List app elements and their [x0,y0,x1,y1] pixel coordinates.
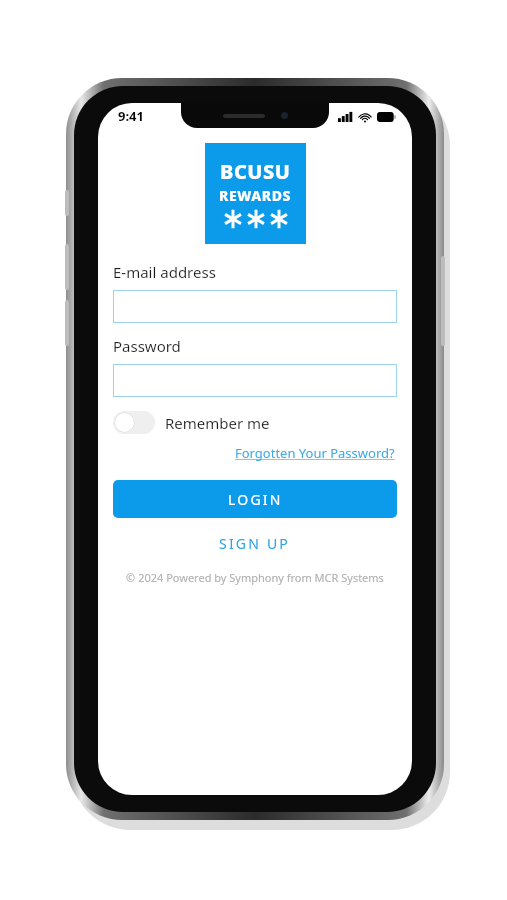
staticText: © 2024 Powered by Symphony from MCR Syst… [126,570,384,585]
staticText: REWARDS [219,186,292,205]
staticText: BCUSU [220,158,291,185]
staticText: Remember me [165,413,270,433]
staticText: 9:41 [118,107,144,125]
button[interactable] [113,364,397,397]
staticText: E-mail address [113,262,216,282]
button[interactable]: Forgotten Your Password? [233,442,397,464]
staticText: LOGIN [228,490,283,509]
button[interactable]: SIGN UP [215,530,295,557]
button[interactable]: Remember me toggle [113,411,270,434]
staticText: Password [113,336,181,356]
button[interactable]: LOGIN [113,480,397,518]
button[interactable] [113,290,397,323]
button[interactable]: Remember me toggle [113,411,155,434]
